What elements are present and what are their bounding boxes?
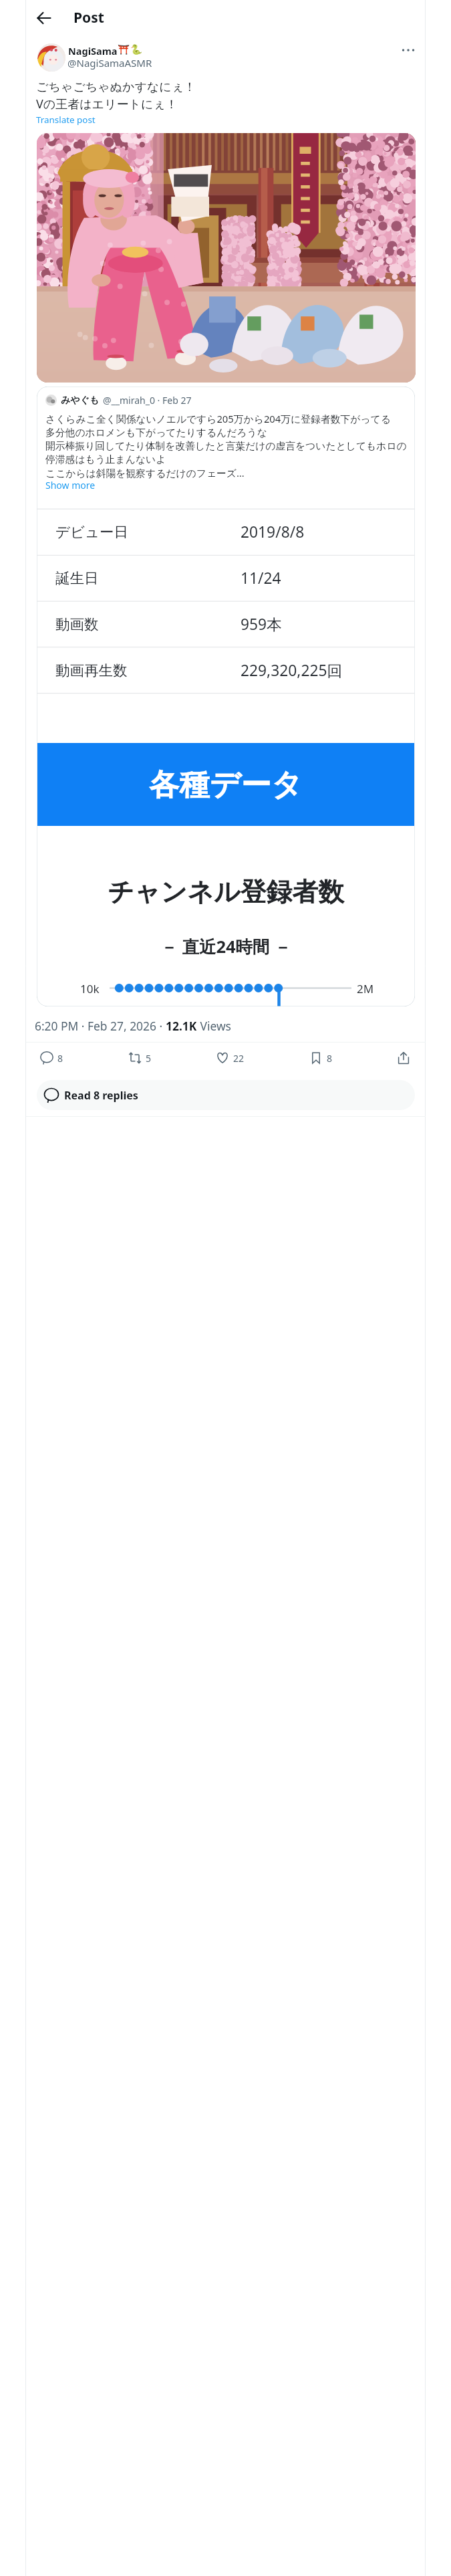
button[interactable]: Bookmark: [309, 1051, 333, 1065]
staticText: 12.1K: [166, 1018, 197, 1034]
button[interactable]: 誕生日: [37, 555, 415, 601]
button[interactable]: Post image: [37, 133, 416, 383]
button[interactable]: Reply: [40, 1051, 63, 1065]
button[interactable]: Repost: [128, 1051, 152, 1065]
staticText: NagiSama: [68, 44, 118, 58]
staticText: 229,320,225回: [241, 660, 343, 681]
button[interactable]: 動画再生数: [37, 647, 415, 693]
button[interactable]: Share: [397, 1051, 410, 1065]
staticText: @__mirah_0 · Feb 27: [103, 394, 192, 407]
button[interactable]: More options: [395, 37, 422, 64]
staticText: Show more: [45, 479, 96, 492]
button[interactable]: NagiSama: [68, 44, 143, 58]
staticText: デビュー日: [55, 523, 129, 541]
staticText: 10k: [80, 981, 100, 996]
staticText: 6:20 PM · Feb 27, 2026 ·: [35, 1018, 166, 1034]
button[interactable]: Back: [32, 6, 56, 30]
staticText: 22: [233, 1052, 245, 1065]
button[interactable]: Translate post: [36, 114, 96, 126]
staticText: ごちゃごちゃぬかすなにぇ！ Vの王者はエリートにぇ！: [36, 80, 196, 112]
staticText: Read 8 replies: [64, 1088, 138, 1103]
staticText: 動画数: [55, 615, 99, 633]
button[interactable]: 各種データ: [37, 743, 414, 826]
staticText: 2M: [357, 981, 374, 996]
staticText: みやぐも: [61, 395, 100, 407]
button[interactable]: [37, 43, 65, 72]
staticText: チャンネル登録者数: [37, 876, 415, 909]
staticText: 🐍: [130, 44, 143, 56]
staticText: 5: [146, 1052, 152, 1065]
staticText: 8: [57, 1052, 63, 1065]
staticText: さくらみこ全く関係ないノエルですら205万から204万に登録者数下がってる 多分…: [45, 412, 407, 479]
button[interactable]: Post: [73, 8, 104, 27]
staticText: 959本: [241, 614, 282, 635]
button[interactable]: みやぐも: [37, 387, 415, 1006]
staticText: Views: [197, 1018, 231, 1034]
staticText: 11/24: [241, 568, 281, 588]
button[interactable]: Show more: [45, 479, 96, 492]
button[interactable]: Like: [216, 1051, 245, 1065]
button[interactable]: 動画数: [37, 601, 415, 647]
staticText: 8: [327, 1052, 333, 1065]
staticText: － 直近24時間 －: [37, 935, 415, 958]
staticText: Post: [73, 8, 104, 27]
button[interactable]: Read 8 replies: [37, 1080, 415, 1110]
staticText: ⛩️: [118, 44, 130, 56]
staticText: 各種データ: [149, 766, 303, 804]
staticText: @NagiSamaASMR: [67, 56, 152, 70]
staticText: Translate post: [36, 114, 96, 126]
staticText: 動画再生数: [55, 661, 128, 679]
button[interactable]: デビュー日: [37, 509, 415, 555]
staticText: 誕生日: [55, 569, 99, 587]
staticText: 2019/8/8: [241, 522, 305, 542]
